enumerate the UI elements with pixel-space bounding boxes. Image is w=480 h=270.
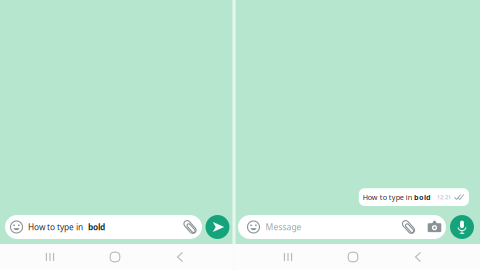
staticText: How to type in (363, 192, 412, 202)
button[interactable]: Emoji (238, 221, 259, 233)
button[interactable]: Home (95, 244, 135, 270)
button[interactable]: Home (333, 244, 373, 270)
button[interactable]: Emoji (5, 221, 22, 233)
button[interactable]: Attach (400, 218, 417, 235)
button[interactable]: Recents (268, 244, 308, 270)
staticText: bold (414, 192, 431, 202)
button[interactable]: Voice message (450, 215, 474, 239)
staticText: How to type in (28, 221, 83, 233)
button[interactable]: Back (160, 244, 200, 270)
staticText: Message (265, 221, 301, 233)
button[interactable]: Send (205, 215, 229, 239)
staticText: bold (88, 221, 105, 233)
button[interactable]: Attach (181, 218, 202, 235)
button[interactable]: Recents (30, 244, 70, 270)
button[interactable]: Back (398, 244, 438, 270)
button[interactable]: Camera (427, 219, 446, 234)
staticText: 12:21 (437, 193, 451, 201)
